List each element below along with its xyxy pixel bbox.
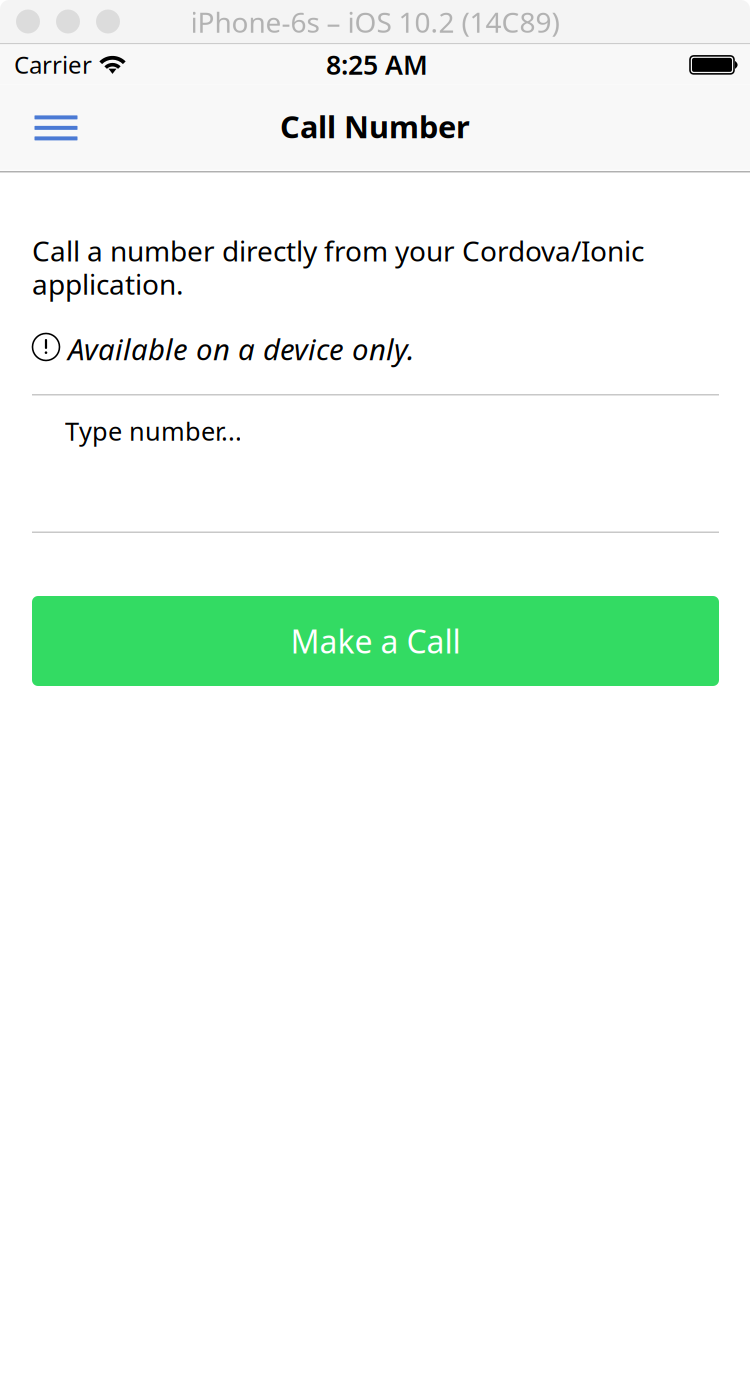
staticText: Available on a device only.	[68, 329, 415, 368]
button[interactable]: Make a Call	[32, 596, 719, 686]
staticText: Type number...	[65, 414, 242, 448]
staticText: Carrier	[14, 48, 92, 80]
staticText: Call a number directly from your Cordova…	[32, 232, 644, 269]
button[interactable]: Type number...	[32, 394, 719, 533]
staticText: Call Number	[280, 106, 470, 147]
staticText: iPhone-6s – iOS 10.2 (14C89)	[190, 3, 559, 41]
staticText: application.	[32, 265, 184, 302]
staticText: 8:25 AM	[326, 47, 428, 82]
staticText: Make a Call	[290, 620, 460, 662]
button[interactable]: Menu	[0, 85, 112, 171]
